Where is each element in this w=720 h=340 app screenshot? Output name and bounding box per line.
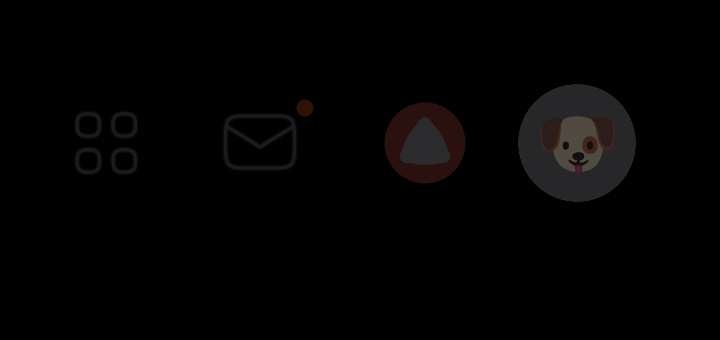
button[interactable]: Record <box>373 91 477 195</box>
button[interactable]: Mail <box>208 98 312 194</box>
staticText: 🐶 <box>534 105 619 183</box>
button[interactable]: Apps <box>54 91 158 195</box>
button[interactable]: Profile <box>515 81 639 205</box>
